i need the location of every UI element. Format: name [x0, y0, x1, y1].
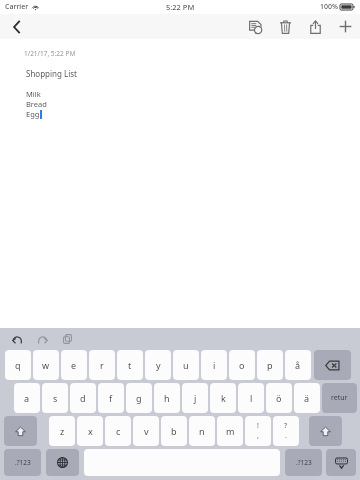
staticText: h: [164, 392, 170, 404]
button[interactable]: l: [238, 383, 264, 413]
button[interactable]: Delete: [274, 14, 296, 39]
button[interactable]: d: [70, 383, 96, 413]
staticText: g: [136, 392, 142, 404]
staticText: ä: [304, 392, 310, 404]
staticText: u: [183, 359, 189, 371]
button[interactable]: Hide keyboard: [326, 449, 356, 476]
staticText: f: [109, 392, 113, 404]
staticText: .?123: [15, 458, 31, 467]
staticText: Milk: [26, 89, 41, 99]
staticText: 1/21/17, 5:22 PM: [24, 49, 76, 58]
staticText: a: [24, 392, 30, 404]
button[interactable]: Markup: [244, 14, 266, 39]
button[interactable]: .?123: [285, 449, 322, 476]
button[interactable]: z: [49, 416, 75, 446]
button[interactable]: Delete: [314, 350, 351, 380]
staticText: z: [60, 425, 65, 437]
button[interactable]: Shift: [309, 416, 342, 446]
button[interactable]: p: [257, 350, 283, 380]
button[interactable]: j: [182, 383, 208, 413]
button[interactable]: v: [133, 416, 159, 446]
button[interactable]: k: [210, 383, 236, 413]
button[interactable]: u: [173, 350, 199, 380]
staticText: w: [42, 359, 50, 371]
staticText: s: [53, 392, 58, 404]
button[interactable]: g: [126, 383, 152, 413]
button[interactable]: ?: [273, 416, 299, 446]
staticText: i: [213, 359, 216, 371]
button[interactable]: a: [14, 383, 40, 413]
staticText: l: [250, 392, 253, 404]
button[interactable]: .?123: [4, 449, 41, 476]
button[interactable]: m: [217, 416, 243, 446]
button[interactable]: ö: [266, 383, 292, 413]
staticText: Bread: [26, 99, 47, 109]
button[interactable]: y: [145, 350, 171, 380]
staticText: c: [116, 425, 121, 437]
button[interactable]: o: [229, 350, 255, 380]
button[interactable]: i: [201, 350, 227, 380]
button[interactable]: s: [42, 383, 68, 413]
button[interactable]: f: [98, 383, 124, 413]
staticText: t: [128, 359, 132, 371]
staticText: p: [267, 359, 273, 371]
staticText: r: [100, 359, 104, 371]
button[interactable]: r: [89, 350, 115, 380]
staticText: q: [15, 359, 21, 371]
staticText: o: [239, 359, 245, 371]
staticText: retur: [331, 393, 348, 403]
button[interactable]: w: [33, 350, 59, 380]
button[interactable]: Paste: [57, 329, 77, 349]
staticText: å: [295, 359, 301, 371]
staticText: 100%: [320, 2, 338, 12]
staticText: 5:22 PM: [166, 2, 195, 12]
button[interactable]: b: [161, 416, 187, 446]
button[interactable]: n: [189, 416, 215, 446]
button[interactable]: c: [105, 416, 131, 446]
button[interactable]: q: [5, 350, 31, 380]
staticText: .?123: [296, 458, 312, 467]
staticText: y: [156, 359, 161, 371]
staticText: ö: [276, 392, 282, 404]
button[interactable]: New note: [334, 14, 356, 39]
staticText: k: [221, 392, 226, 404]
staticText: e: [71, 359, 77, 371]
staticText: d: [80, 392, 86, 404]
staticText: v: [144, 425, 149, 437]
staticText: !: [257, 421, 259, 431]
button[interactable]: x: [77, 416, 103, 446]
button[interactable]: Shift: [4, 416, 37, 446]
button[interactable]: ä: [294, 383, 320, 413]
button[interactable]: h: [154, 383, 180, 413]
button[interactable]: Undo: [7, 329, 27, 349]
staticText: x: [88, 425, 93, 437]
button[interactable]: Back: [0, 14, 34, 39]
button[interactable]: Switch language: [46, 449, 79, 476]
staticText: Egg: [26, 109, 40, 119]
button[interactable]: retur: [322, 383, 357, 413]
button[interactable]: !: [245, 416, 271, 446]
button[interactable]: e: [61, 350, 87, 380]
staticText: b: [171, 425, 177, 437]
staticText: ?: [284, 421, 288, 431]
staticText: j: [194, 392, 197, 404]
button[interactable]: t: [117, 350, 143, 380]
button[interactable]: Share: [304, 14, 326, 39]
staticText: n: [199, 425, 205, 437]
button[interactable]: Redo: [32, 329, 52, 349]
staticText: ,: [257, 431, 259, 441]
staticText: Shopping List: [26, 68, 77, 79]
button[interactable]: å: [285, 350, 311, 380]
staticText: .: [285, 431, 287, 441]
staticText: Carrier: [5, 2, 29, 12]
staticText: m: [226, 425, 235, 437]
